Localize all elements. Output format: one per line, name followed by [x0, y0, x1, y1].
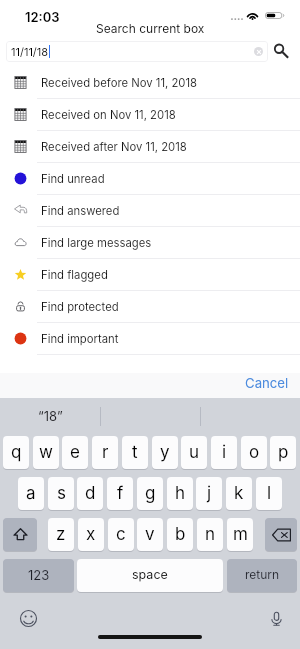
button[interactable]: Find large messages	[0, 227, 300, 258]
staticText: g	[145, 483, 156, 504]
button[interactable]: Dictate	[267, 609, 285, 627]
button[interactable]: z	[48, 518, 74, 551]
staticText: space	[132, 567, 168, 582]
staticText: r	[102, 442, 109, 463]
staticText: k	[234, 483, 244, 504]
staticText: x	[86, 524, 96, 545]
button[interactable]: e	[62, 436, 88, 469]
button[interactable]: j	[196, 477, 222, 510]
staticText: c	[116, 524, 126, 545]
staticText: 12:03	[25, 9, 60, 25]
button[interactable]: s	[48, 477, 74, 510]
button[interactable]: n	[197, 518, 223, 551]
button[interactable]: d	[77, 477, 103, 510]
staticText: t	[132, 442, 138, 463]
staticText: i	[222, 442, 227, 463]
button[interactable]: Find important	[0, 323, 300, 354]
button[interactable]: l	[256, 477, 282, 510]
button[interactable]: Find flagged	[0, 259, 300, 290]
button[interactable]: Find answered	[0, 195, 300, 226]
staticText: h	[175, 483, 186, 504]
button[interactable]: Emoji	[19, 609, 37, 627]
button[interactable]: Find unread	[0, 163, 300, 194]
button[interactable]: Shift	[3, 518, 37, 551]
button[interactable]: space	[77, 559, 223, 592]
staticText: Received on Nov 11, 2018	[41, 108, 176, 122]
button[interactable]: Search	[271, 41, 291, 61]
button[interactable]: w	[33, 436, 59, 469]
staticText: Received after Nov 11, 2018	[41, 140, 187, 154]
staticText: return	[245, 567, 280, 582]
button[interactable]: Cancel	[245, 375, 289, 391]
staticText: “18”	[38, 408, 63, 424]
button[interactable]: m	[227, 518, 253, 551]
button[interactable]: r	[92, 436, 118, 469]
button[interactable]: k	[226, 477, 252, 510]
button[interactable]: i	[211, 436, 237, 469]
staticText: m	[233, 524, 248, 545]
staticText: z	[56, 524, 66, 545]
button[interactable]: c	[108, 518, 134, 551]
button[interactable]: Received on Nov 11, 2018	[0, 99, 300, 130]
staticText: e	[70, 442, 80, 463]
button[interactable]: 11/11/18	[6, 41, 268, 62]
button[interactable]: y	[152, 436, 178, 469]
staticText: Find important	[41, 332, 119, 346]
button[interactable]: Received before Nov 11, 2018	[0, 67, 300, 98]
button[interactable]: Received after Nov 11, 2018	[0, 131, 300, 162]
button[interactable]: Find protected	[0, 291, 300, 322]
staticText: Find unread	[41, 172, 105, 186]
button[interactable]: h	[167, 477, 193, 510]
button[interactable]: b	[167, 518, 193, 551]
staticText: f	[117, 483, 124, 504]
button[interactable]: q	[3, 436, 29, 469]
button[interactable]: x	[78, 518, 104, 551]
button[interactable]: g	[137, 477, 163, 510]
staticText: d	[85, 483, 96, 504]
staticText: y	[160, 442, 170, 463]
staticText: Cancel	[245, 375, 289, 391]
button[interactable]: o	[241, 436, 267, 469]
staticText: n	[205, 524, 216, 545]
button[interactable]: return	[227, 559, 297, 592]
button[interactable]: Clear text	[254, 47, 263, 56]
staticText: j	[207, 483, 212, 504]
staticText: 11/11/18	[11, 45, 49, 58]
staticText: Find protected	[41, 300, 119, 314]
button[interactable]: u	[181, 436, 207, 469]
button[interactable]: v	[137, 518, 163, 551]
staticText: q	[11, 442, 22, 463]
staticText: 123	[28, 567, 50, 583]
button[interactable]: 123	[3, 559, 74, 592]
staticText: b	[175, 524, 186, 545]
button[interactable]: “18”	[0, 398, 100, 433]
staticText: Find large messages	[41, 236, 152, 250]
staticText: v	[145, 524, 155, 545]
button[interactable]: t	[122, 436, 148, 469]
staticText: Find flagged	[41, 268, 108, 282]
button[interactable]: Backspace	[265, 518, 297, 551]
button[interactable]: p	[270, 436, 296, 469]
staticText: Search current box	[96, 21, 205, 36]
staticText: o	[249, 442, 260, 463]
staticText: Received before Nov 11, 2018	[41, 76, 198, 90]
staticText: l	[267, 483, 272, 504]
button[interactable]: f	[107, 477, 133, 510]
staticText: Find answered	[41, 204, 120, 218]
button[interactable]: a	[18, 477, 44, 510]
staticText: s	[57, 483, 66, 504]
staticText: u	[189, 442, 200, 463]
staticText: w	[39, 442, 53, 463]
staticText: a	[26, 483, 36, 504]
staticText: p	[278, 442, 289, 463]
